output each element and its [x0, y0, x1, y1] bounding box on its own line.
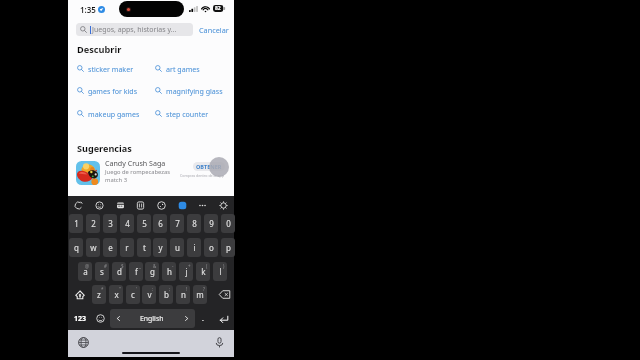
button[interactable]: games for kids: [77, 85, 155, 96]
staticText: (: [206, 263, 208, 269]
button[interactable]: OBTENER: [193, 162, 225, 171]
button[interactable]: j: [179, 262, 193, 281]
button[interactable]: step counter: [155, 108, 229, 119]
staticText: y: [158, 242, 163, 253]
button[interactable]: d: [112, 262, 126, 281]
staticText: ;: [169, 286, 171, 292]
button[interactable]: Sticker: [92, 198, 106, 212]
staticText: _: [139, 263, 141, 269]
button[interactable]: Search: [175, 198, 189, 212]
staticText: s: [100, 266, 104, 277]
button[interactable]: More: [195, 198, 209, 212]
button[interactable]: t: [137, 238, 151, 257]
button[interactable]: Change keyboard: [76, 335, 90, 349]
button[interactable]: 6: [153, 214, 167, 233]
staticText: k: [201, 266, 206, 277]
button[interactable]: 123: [73, 309, 87, 328]
button[interactable]: Shift: [70, 285, 89, 304]
button[interactable]: Enter: [216, 309, 232, 328]
button[interactable]: Clipboard: [113, 198, 127, 212]
staticText: Juego de rompecabezas: [105, 168, 170, 176]
button[interactable]: 9: [204, 214, 218, 233]
button[interactable]: English: [110, 309, 195, 328]
staticText: ): [223, 263, 225, 269]
button[interactable]: 2: [86, 214, 100, 233]
staticText: 6: [158, 218, 163, 229]
button[interactable]: g: [145, 262, 159, 281]
staticText: t: [143, 242, 146, 253]
button[interactable]: art games: [155, 63, 229, 74]
staticText: 1:35: [80, 4, 96, 15]
staticText: @: [85, 263, 90, 269]
button[interactable]: p: [221, 238, 235, 257]
button[interactable]: n: [176, 285, 190, 304]
button[interactable]: m: [193, 285, 207, 304]
button[interactable]: Candy Crush Saga: [76, 159, 226, 192]
staticText: v: [147, 289, 152, 300]
staticText: step counter: [166, 109, 209, 119]
staticText: Compras dentro de la app: [180, 173, 224, 178]
button[interactable]: s: [95, 262, 109, 281]
button[interactable]: 8: [187, 214, 201, 233]
staticText: c: [131, 289, 135, 300]
button[interactable]: Undo: [71, 198, 85, 212]
staticText: art games: [166, 64, 200, 74]
button[interactable]: w: [86, 238, 100, 257]
button[interactable]: sticker maker: [77, 63, 155, 74]
staticText: o: [209, 242, 214, 253]
button[interactable]: 7: [170, 214, 184, 233]
staticText: Descubrir: [77, 43, 122, 56]
staticText: g: [150, 266, 155, 277]
staticText: w: [90, 242, 97, 253]
button[interactable]: i: [187, 238, 201, 257]
button[interactable]: l: [213, 262, 227, 281]
staticText: m: [196, 289, 204, 300]
staticText: a: [83, 266, 88, 277]
button[interactable]: Juegos, apps, historias y...: [76, 23, 193, 36]
button[interactable]: k: [196, 262, 210, 281]
staticText: 8: [192, 218, 197, 229]
button[interactable]: Cancelar: [199, 23, 229, 36]
button[interactable]: o: [204, 238, 218, 257]
button[interactable]: Translate: [133, 198, 147, 212]
button[interactable]: y: [153, 238, 167, 257]
staticText: $: [121, 263, 124, 269]
staticText: u: [175, 242, 180, 253]
button[interactable]: x: [109, 285, 123, 304]
button[interactable]: c: [126, 285, 140, 304]
staticText: 1: [74, 218, 79, 229]
button[interactable]: makeup games: [77, 108, 155, 119]
staticText: *: [101, 286, 104, 292]
button[interactable]: z: [92, 285, 106, 304]
button[interactable]: Emoji: [93, 309, 107, 328]
staticText: 82: [215, 5, 221, 12]
staticText: j: [185, 266, 188, 277]
button[interactable]: Backspace: [216, 285, 232, 304]
staticText: d: [117, 266, 122, 277]
button[interactable]: 3: [103, 214, 117, 233]
button[interactable]: a: [78, 262, 92, 281]
staticText: Candy Crush Saga: [105, 158, 166, 168]
button[interactable]: magnifying glass: [155, 85, 229, 96]
button[interactable]: v: [142, 285, 156, 304]
staticText: r: [125, 242, 129, 253]
button[interactable]: .: [197, 309, 208, 328]
staticText: Sugerencias: [77, 142, 132, 154]
staticText: z: [97, 289, 101, 300]
button[interactable]: 4: [120, 214, 134, 233]
button[interactable]: 5: [137, 214, 151, 233]
button[interactable]: e: [103, 238, 117, 257]
button[interactable]: h: [162, 262, 176, 281]
button[interactable]: 1: [69, 214, 83, 233]
staticText: q: [74, 242, 79, 253]
button[interactable]: b: [159, 285, 173, 304]
button[interactable]: Settings: [216, 198, 230, 212]
staticText: p: [226, 242, 231, 253]
button[interactable]: r: [120, 238, 134, 257]
button[interactable]: u: [170, 238, 184, 257]
button[interactable]: f: [129, 262, 143, 281]
button[interactable]: 0: [221, 214, 235, 233]
button[interactable]: q: [69, 238, 83, 257]
button[interactable]: Voice input: [212, 335, 226, 349]
button[interactable]: Theme: [154, 198, 168, 212]
